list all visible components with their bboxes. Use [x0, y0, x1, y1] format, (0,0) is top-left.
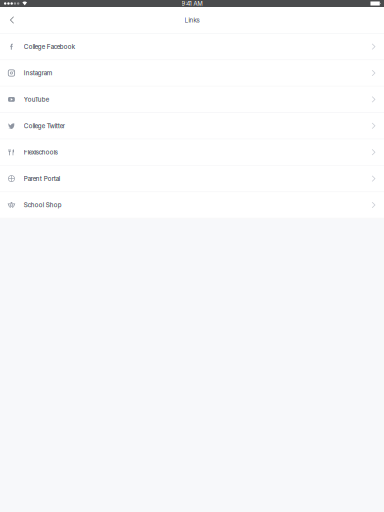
- staticText: Flexischools: [24, 148, 58, 156]
- staticText: Parent Portal: [24, 175, 60, 182]
- staticText: School Shop: [24, 201, 62, 209]
- button[interactable]: College Facebook: [0, 34, 384, 60]
- staticText: 9:41 AM: [181, 0, 202, 7]
- button[interactable]: YouTube: [0, 87, 384, 113]
- button[interactable]: Instagram: [0, 60, 384, 87]
- button[interactable]: Flexischools: [0, 139, 384, 166]
- button[interactable]: Back: [0, 7, 24, 33]
- staticText: College Twitter: [24, 122, 65, 130]
- staticText: College Facebook: [24, 43, 75, 50]
- button[interactable]: Parent Portal: [0, 166, 384, 192]
- staticText: Links: [184, 16, 199, 24]
- staticText: YouTube: [24, 95, 49, 103]
- button[interactable]: School Shop: [0, 192, 384, 219]
- staticText: Instagram: [24, 69, 52, 77]
- button[interactable]: College Twitter: [0, 113, 384, 139]
